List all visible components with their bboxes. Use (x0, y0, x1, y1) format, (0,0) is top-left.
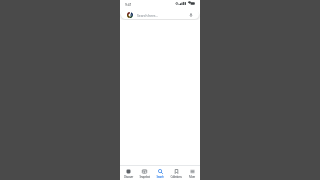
staticText: Collections (170, 175, 182, 179)
staticText: More (189, 175, 195, 179)
button[interactable]: Snapshot (136, 166, 152, 180)
staticText: Search here… (137, 13, 158, 17)
button[interactable]: Search here… (121, 10, 199, 19)
button[interactable]: Discover (120, 166, 136, 180)
staticText: Discover (124, 175, 133, 179)
button[interactable]: Collections (168, 166, 184, 180)
button[interactable]: More (184, 166, 200, 180)
button[interactable]: Search (152, 166, 168, 180)
other: Voice search (189, 13, 193, 17)
staticText: Search (156, 175, 164, 179)
staticText: Snapshot (139, 175, 150, 179)
staticText: 9:41 (125, 2, 132, 6)
